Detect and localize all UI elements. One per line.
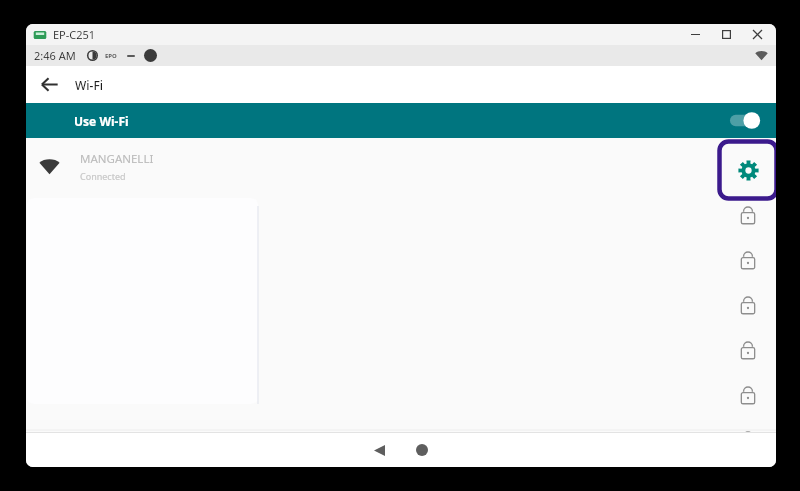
staticText: EP-C251 — [53, 27, 96, 42]
button[interactable]: Close — [742, 24, 773, 45]
button[interactable]: Network settings — [718, 140, 776, 200]
button[interactable]: MANGANELLI — [26, 138, 776, 194]
staticText: Connected — [80, 170, 126, 182]
staticText: Use Wi-Fi — [74, 113, 129, 129]
button[interactable]: Use Wi-Fi — [26, 103, 776, 138]
staticText: MANGANELLI — [80, 151, 154, 167]
button[interactable]: Maximize — [711, 24, 742, 45]
button[interactable]: Navigate up — [26, 66, 72, 103]
button[interactable]: Back — [362, 433, 396, 467]
staticText: EPO — [105, 52, 117, 60]
button[interactable]: Minimize — [680, 24, 711, 45]
button[interactable]: Home — [405, 433, 439, 467]
staticText: 2:46 AM — [34, 48, 76, 63]
staticText: Wi-Fi — [75, 77, 103, 93]
